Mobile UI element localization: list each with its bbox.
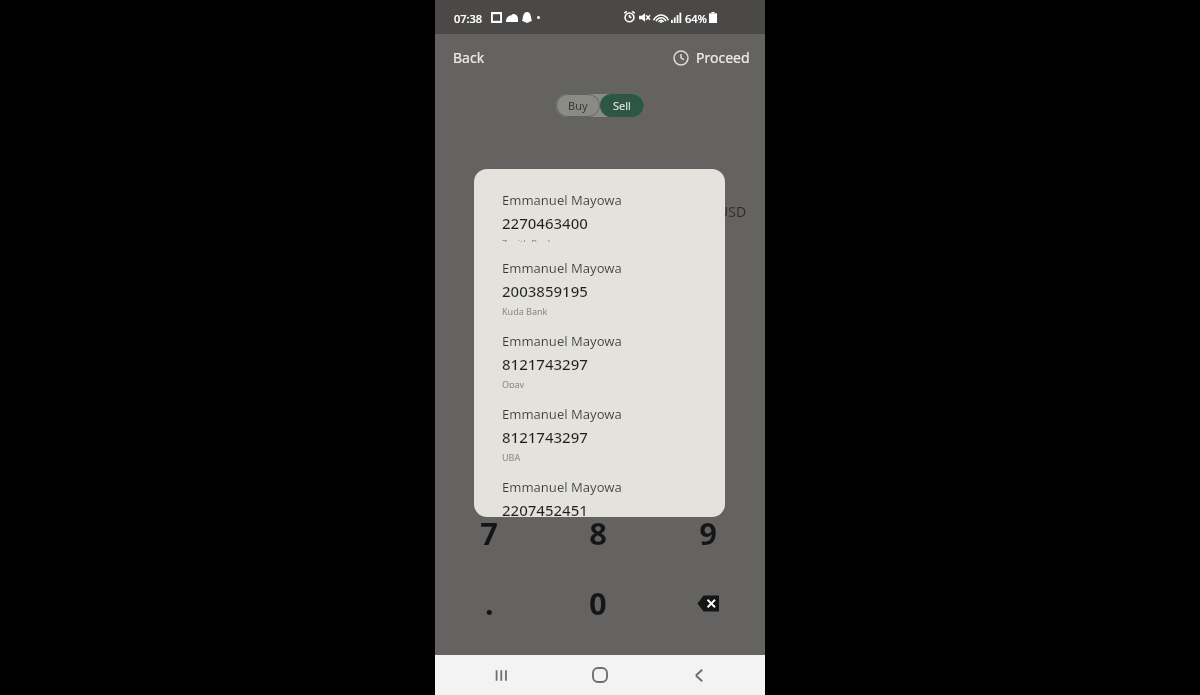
button[interactable]: .: [463, 582, 515, 624]
staticText: Proceed: [696, 48, 750, 67]
staticText: Emmanuel Mayowa: [502, 405, 622, 423]
staticText: 8: [589, 512, 607, 554]
staticText: 2270463400: [502, 213, 588, 233]
button[interactable]: Recents: [481, 655, 521, 695]
staticText: 2207452451: [502, 500, 588, 517]
staticText: Zenith Bank: [502, 237, 553, 242]
button[interactable]: Sell: [600, 94, 644, 117]
staticText: Emmanuel Mayowa: [502, 332, 622, 350]
button[interactable]: Home: [580, 655, 620, 695]
staticText: UBA: [502, 451, 521, 461]
button[interactable]: 8: [572, 512, 624, 554]
staticText: 64%: [685, 11, 707, 26]
button[interactable]: Proceed: [665, 43, 758, 72]
button[interactable]: Emmanuel Mayowa: [474, 242, 725, 315]
button[interactable]: 9: [682, 512, 734, 554]
staticText: 9: [699, 512, 717, 554]
staticText: .: [485, 582, 494, 624]
button[interactable]: 7: [463, 512, 515, 554]
staticText: Sell: [613, 98, 631, 113]
button[interactable]: Back: [443, 42, 495, 73]
staticText: 8121743297: [502, 427, 588, 447]
button[interactable]: Back: [679, 655, 719, 695]
button[interactable]: Emmanuel Mayowa: [474, 388, 725, 461]
button[interactable]: Emmanuel Mayowa: [474, 315, 725, 388]
button[interactable]: Emmanuel Mayowa: [474, 169, 725, 242]
staticText: Back: [453, 48, 485, 67]
staticText: 0: [589, 582, 607, 624]
staticText: 8121743297: [502, 354, 588, 374]
staticText: 2003859195: [502, 281, 588, 301]
staticText: Emmanuel Mayowa: [502, 191, 622, 209]
staticText: USD: [718, 202, 747, 221]
staticText: Buy: [568, 98, 588, 113]
staticText: 7: [480, 512, 498, 554]
button[interactable]: Emmanuel Mayowa: [474, 461, 725, 517]
button[interactable]: Buy: [556, 94, 600, 117]
staticText: Kuda Bank: [502, 305, 548, 315]
button[interactable]: Backspace: [682, 582, 734, 624]
staticText: Emmanuel Mayowa: [502, 259, 622, 277]
button[interactable]: 0: [572, 582, 624, 624]
staticText: Emmanuel Mayowa: [502, 478, 622, 496]
staticText: 07:38: [454, 11, 483, 26]
staticText: Opay: [502, 378, 525, 388]
